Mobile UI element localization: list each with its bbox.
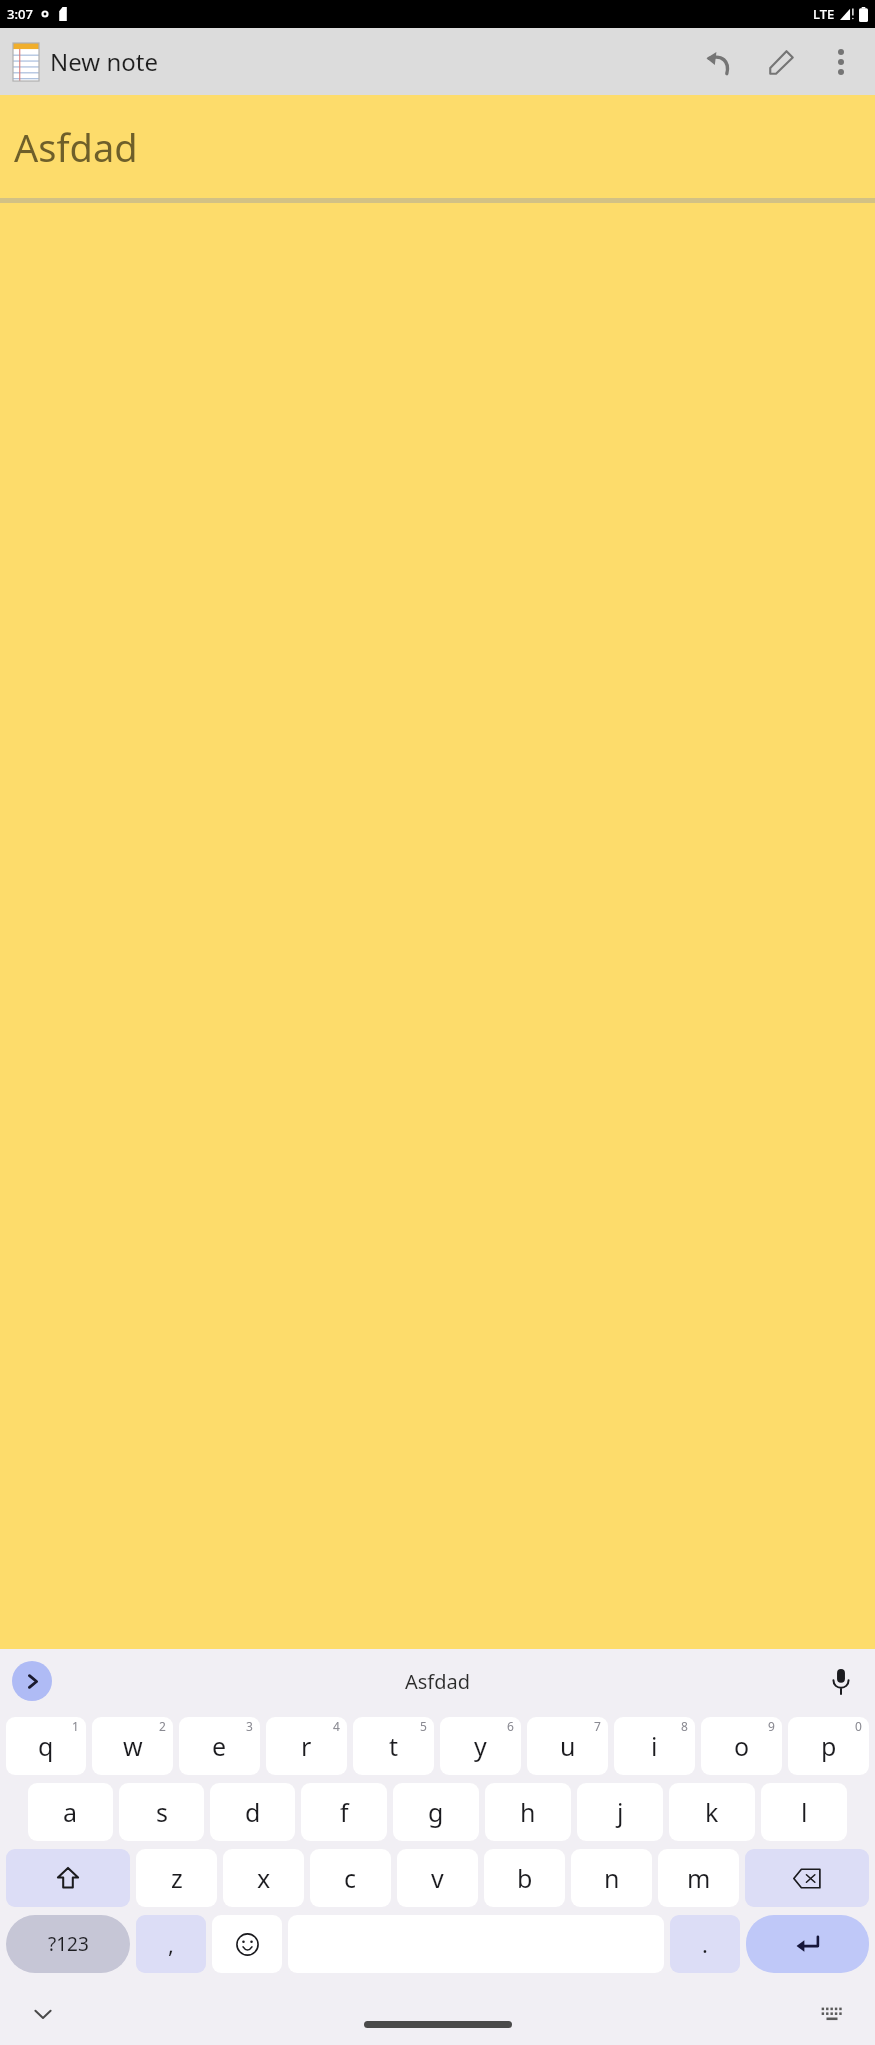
button[interactable]: a (28, 1783, 113, 1841)
button[interactable]: Change keyboard (809, 1991, 855, 2037)
button[interactable]: Asfdad (405, 1668, 471, 1695)
button[interactable]: Voice input (821, 1661, 861, 1701)
staticText: d (245, 1795, 261, 1829)
button[interactable]: More options (817, 38, 865, 86)
staticText: 3:07 (7, 5, 33, 23)
staticText: h (520, 1795, 536, 1829)
button[interactable]: p (788, 1717, 869, 1775)
staticText: r (301, 1729, 312, 1763)
staticText: i (651, 1729, 658, 1763)
staticText: u (560, 1729, 576, 1763)
staticText: ?123 (48, 1931, 89, 1957)
staticText: q (38, 1729, 54, 1763)
staticText: n (604, 1861, 620, 1895)
staticText: y (474, 1729, 487, 1763)
button[interactable]: f (301, 1783, 387, 1841)
button[interactable]: j (577, 1783, 663, 1841)
button[interactable]: o (701, 1717, 782, 1775)
staticText: 2 (159, 1718, 166, 1734)
button[interactable]: y (440, 1717, 521, 1775)
staticText: c (344, 1861, 357, 1895)
staticText: j (617, 1795, 624, 1829)
button[interactable]: m (658, 1849, 739, 1907)
staticText: e (212, 1729, 227, 1763)
staticText: f (340, 1795, 349, 1829)
button[interactable]: q (6, 1717, 86, 1775)
staticText: k (705, 1795, 719, 1829)
button[interactable]: d (210, 1783, 295, 1841)
staticText: 4 (333, 1718, 340, 1734)
button[interactable]: Comma (136, 1915, 206, 1973)
button[interactable]: Enter (746, 1915, 869, 1973)
staticText: 6 (507, 1718, 514, 1734)
staticText: s (156, 1795, 168, 1829)
button[interactable]: b (484, 1849, 565, 1907)
button[interactable]: Undo (695, 38, 743, 86)
staticText: z (171, 1861, 183, 1895)
button[interactable]: z (136, 1849, 217, 1907)
button[interactable]: Expand suggestions (12, 1661, 52, 1701)
staticText: o (734, 1729, 750, 1763)
button[interactable]: k (669, 1783, 755, 1841)
button[interactable]: Edit (757, 38, 805, 86)
staticText: x (257, 1861, 271, 1895)
staticText: New note (50, 45, 158, 78)
button[interactable]: c (310, 1849, 391, 1907)
button[interactable]: t (353, 1717, 434, 1775)
button[interactable]: l (761, 1783, 847, 1841)
button[interactable]: w (92, 1717, 173, 1775)
button[interactable]: Asfdad (0, 95, 875, 198)
button[interactable]: h (485, 1783, 571, 1841)
button[interactable]: Symbols (6, 1915, 130, 1973)
staticText: 0 (855, 1718, 862, 1734)
button[interactable]: n (571, 1849, 652, 1907)
staticText: LTE (813, 5, 835, 23)
button[interactable]: r (266, 1717, 347, 1775)
staticText: 9 (768, 1718, 775, 1734)
staticText: a (63, 1795, 78, 1829)
staticText: . (702, 1929, 708, 1959)
staticText: g (428, 1795, 444, 1829)
button[interactable]: Period (670, 1915, 740, 1973)
button[interactable]: e (179, 1717, 260, 1775)
button[interactable]: Hide keyboard (20, 1991, 66, 2037)
button[interactable]: shift (6, 1849, 130, 1907)
button[interactable]: u (527, 1717, 608, 1775)
staticText: 5 (420, 1718, 427, 1734)
staticText: w (123, 1729, 143, 1763)
staticText: Asfdad (405, 1668, 471, 1695)
button[interactable]: g (393, 1783, 479, 1841)
staticText: 8 (681, 1718, 688, 1734)
staticText: p (821, 1729, 837, 1763)
button[interactable]: v (397, 1849, 478, 1907)
staticText: , (168, 1929, 174, 1959)
staticText: t (389, 1729, 399, 1763)
staticText: Asfdad (14, 121, 138, 173)
staticText: m (687, 1861, 711, 1895)
button[interactable]: back (745, 1849, 869, 1907)
button[interactable]: i (614, 1717, 695, 1775)
button[interactable]: Emoji (212, 1915, 282, 1973)
staticText: 1 (72, 1718, 79, 1734)
staticText: b (517, 1861, 533, 1895)
staticText: 3 (246, 1718, 253, 1734)
staticText: v (431, 1861, 444, 1895)
staticText: l (801, 1795, 808, 1829)
staticText: 7 (594, 1718, 601, 1734)
button[interactable]: s (119, 1783, 204, 1841)
button[interactable]: x (223, 1849, 304, 1907)
